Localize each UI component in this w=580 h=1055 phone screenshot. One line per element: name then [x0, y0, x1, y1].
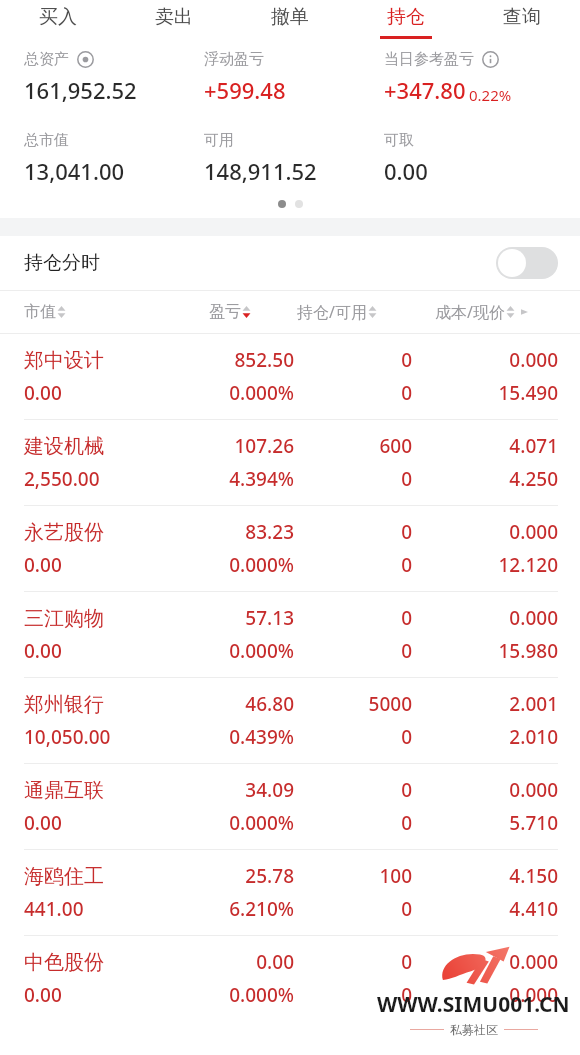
- staticText: 25.78: [189, 863, 294, 889]
- button[interactable]: 郑州银行: [0, 678, 580, 763]
- staticText: 4.250: [412, 466, 558, 492]
- button[interactable]: 卖出: [116, 0, 232, 44]
- staticText: 0.000: [412, 519, 558, 545]
- staticText: 5.710: [412, 810, 558, 836]
- staticText: 4.410: [412, 896, 558, 922]
- staticText: 0.00: [189, 949, 294, 975]
- staticText: 0.00: [384, 156, 428, 186]
- staticText: 查询: [503, 5, 541, 29]
- staticText: 买入: [39, 5, 77, 29]
- staticText: 建设机械: [24, 434, 189, 459]
- button[interactable]: 买入: [0, 0, 116, 44]
- staticText: 0.000%: [189, 552, 294, 578]
- button[interactable]: 海鸥住工: [0, 850, 580, 935]
- staticText: 0.000%: [189, 638, 294, 664]
- staticText: 0.000: [412, 605, 558, 631]
- button[interactable]: Toggle asset visibility: [24, 50, 94, 69]
- staticText: 0: [294, 777, 412, 803]
- button[interactable]: 持仓: [348, 0, 464, 44]
- staticText: 成本/现价: [435, 301, 505, 323]
- staticText: 852.50: [189, 347, 294, 373]
- button[interactable]: 成本/现价: [435, 301, 529, 323]
- staticText: 107.26: [189, 433, 294, 459]
- staticText: 15.490: [412, 380, 558, 406]
- staticText: 2.010: [412, 724, 558, 750]
- staticText: 441.00: [24, 896, 189, 922]
- staticText: 0: [294, 949, 412, 975]
- staticText: 郑中设计: [24, 348, 189, 373]
- button[interactable]: 三江购物: [0, 592, 580, 677]
- staticText: 0.00: [24, 810, 189, 836]
- staticText: 0: [294, 380, 412, 406]
- staticText: 可用: [204, 131, 234, 150]
- staticText: 总市值: [24, 131, 69, 150]
- staticText: 6.210%: [189, 896, 294, 922]
- staticText: 卖出: [155, 5, 193, 29]
- staticText: 0: [294, 347, 412, 373]
- staticText: 46.80: [189, 691, 294, 717]
- staticText: 0.000: [412, 949, 558, 975]
- staticText: 0: [294, 810, 412, 836]
- button[interactable]: Info: [482, 51, 499, 68]
- staticText: 0.000%: [189, 380, 294, 406]
- staticText: 4.394%: [189, 466, 294, 492]
- button[interactable]: 持仓/可用: [297, 301, 378, 323]
- button[interactable]: 查询: [464, 0, 580, 44]
- button[interactable]: 盈亏: [209, 302, 252, 322]
- button[interactable]: 通鼎互联: [0, 764, 580, 849]
- staticText: 0: [294, 638, 412, 664]
- button[interactable]: 郑中设计: [0, 334, 580, 419]
- staticText: 57.13: [189, 605, 294, 631]
- staticText: 4.071: [412, 433, 558, 459]
- staticText: 2.001: [412, 691, 558, 717]
- staticText: 15.980: [412, 638, 558, 664]
- staticText: 0.000%: [189, 810, 294, 836]
- other: Intraday chart toggle: [496, 247, 558, 279]
- staticText: 浮动盈亏: [204, 50, 264, 69]
- staticText: 0.22%: [469, 85, 512, 105]
- staticText: 34.09: [189, 777, 294, 803]
- staticText: 5000: [294, 691, 412, 717]
- staticText: 总资产: [24, 50, 69, 69]
- staticText: 0.00: [24, 638, 189, 664]
- staticText: 永艺股份: [24, 520, 189, 545]
- staticText: 0.00: [24, 552, 189, 578]
- staticText: 持仓分时: [24, 251, 100, 275]
- staticText: +347.80: [384, 75, 466, 105]
- staticText: 郑州银行: [24, 692, 189, 717]
- staticText: +599.48: [204, 75, 286, 105]
- staticText: 161,952.52: [24, 75, 137, 105]
- staticText: 私募社区: [450, 1022, 498, 1037]
- staticText: 持仓: [387, 5, 425, 29]
- button[interactable]: 市值: [24, 302, 67, 322]
- staticText: 0: [294, 552, 412, 578]
- staticText: 4.150: [412, 863, 558, 889]
- staticText: 2,550.00: [24, 466, 189, 492]
- staticText: 13,041.00: [24, 156, 125, 186]
- button[interactable]: 建设机械: [0, 420, 580, 505]
- staticText: 0.00: [24, 380, 189, 406]
- staticText: 0.00: [24, 982, 189, 1008]
- staticText: 100: [294, 863, 412, 889]
- staticText: 0: [294, 982, 412, 1008]
- staticText: 通鼎互联: [24, 778, 189, 803]
- staticText: 0.000: [412, 347, 558, 373]
- staticText: 中色股份: [24, 950, 189, 975]
- button[interactable]: 撤单: [232, 0, 348, 44]
- staticText: 当日参考盈亏: [384, 50, 474, 69]
- staticText: 0.000%: [189, 982, 294, 1008]
- button[interactable]: 持仓分时: [0, 236, 580, 290]
- staticText: 10,050.00: [24, 724, 189, 750]
- button[interactable]: 中色股份: [0, 936, 580, 1021]
- button[interactable]: 永艺股份: [0, 506, 580, 591]
- staticText: 0.000: [412, 982, 558, 1008]
- staticText: 市值: [24, 302, 56, 322]
- staticText: 0: [294, 605, 412, 631]
- staticText: 148,911.52: [204, 156, 317, 186]
- staticText: 持仓/可用: [297, 301, 367, 323]
- staticText: 0: [294, 466, 412, 492]
- staticText: 撤单: [271, 5, 309, 29]
- staticText: 三江购物: [24, 606, 189, 631]
- staticText: 0: [294, 896, 412, 922]
- staticText: 0: [294, 724, 412, 750]
